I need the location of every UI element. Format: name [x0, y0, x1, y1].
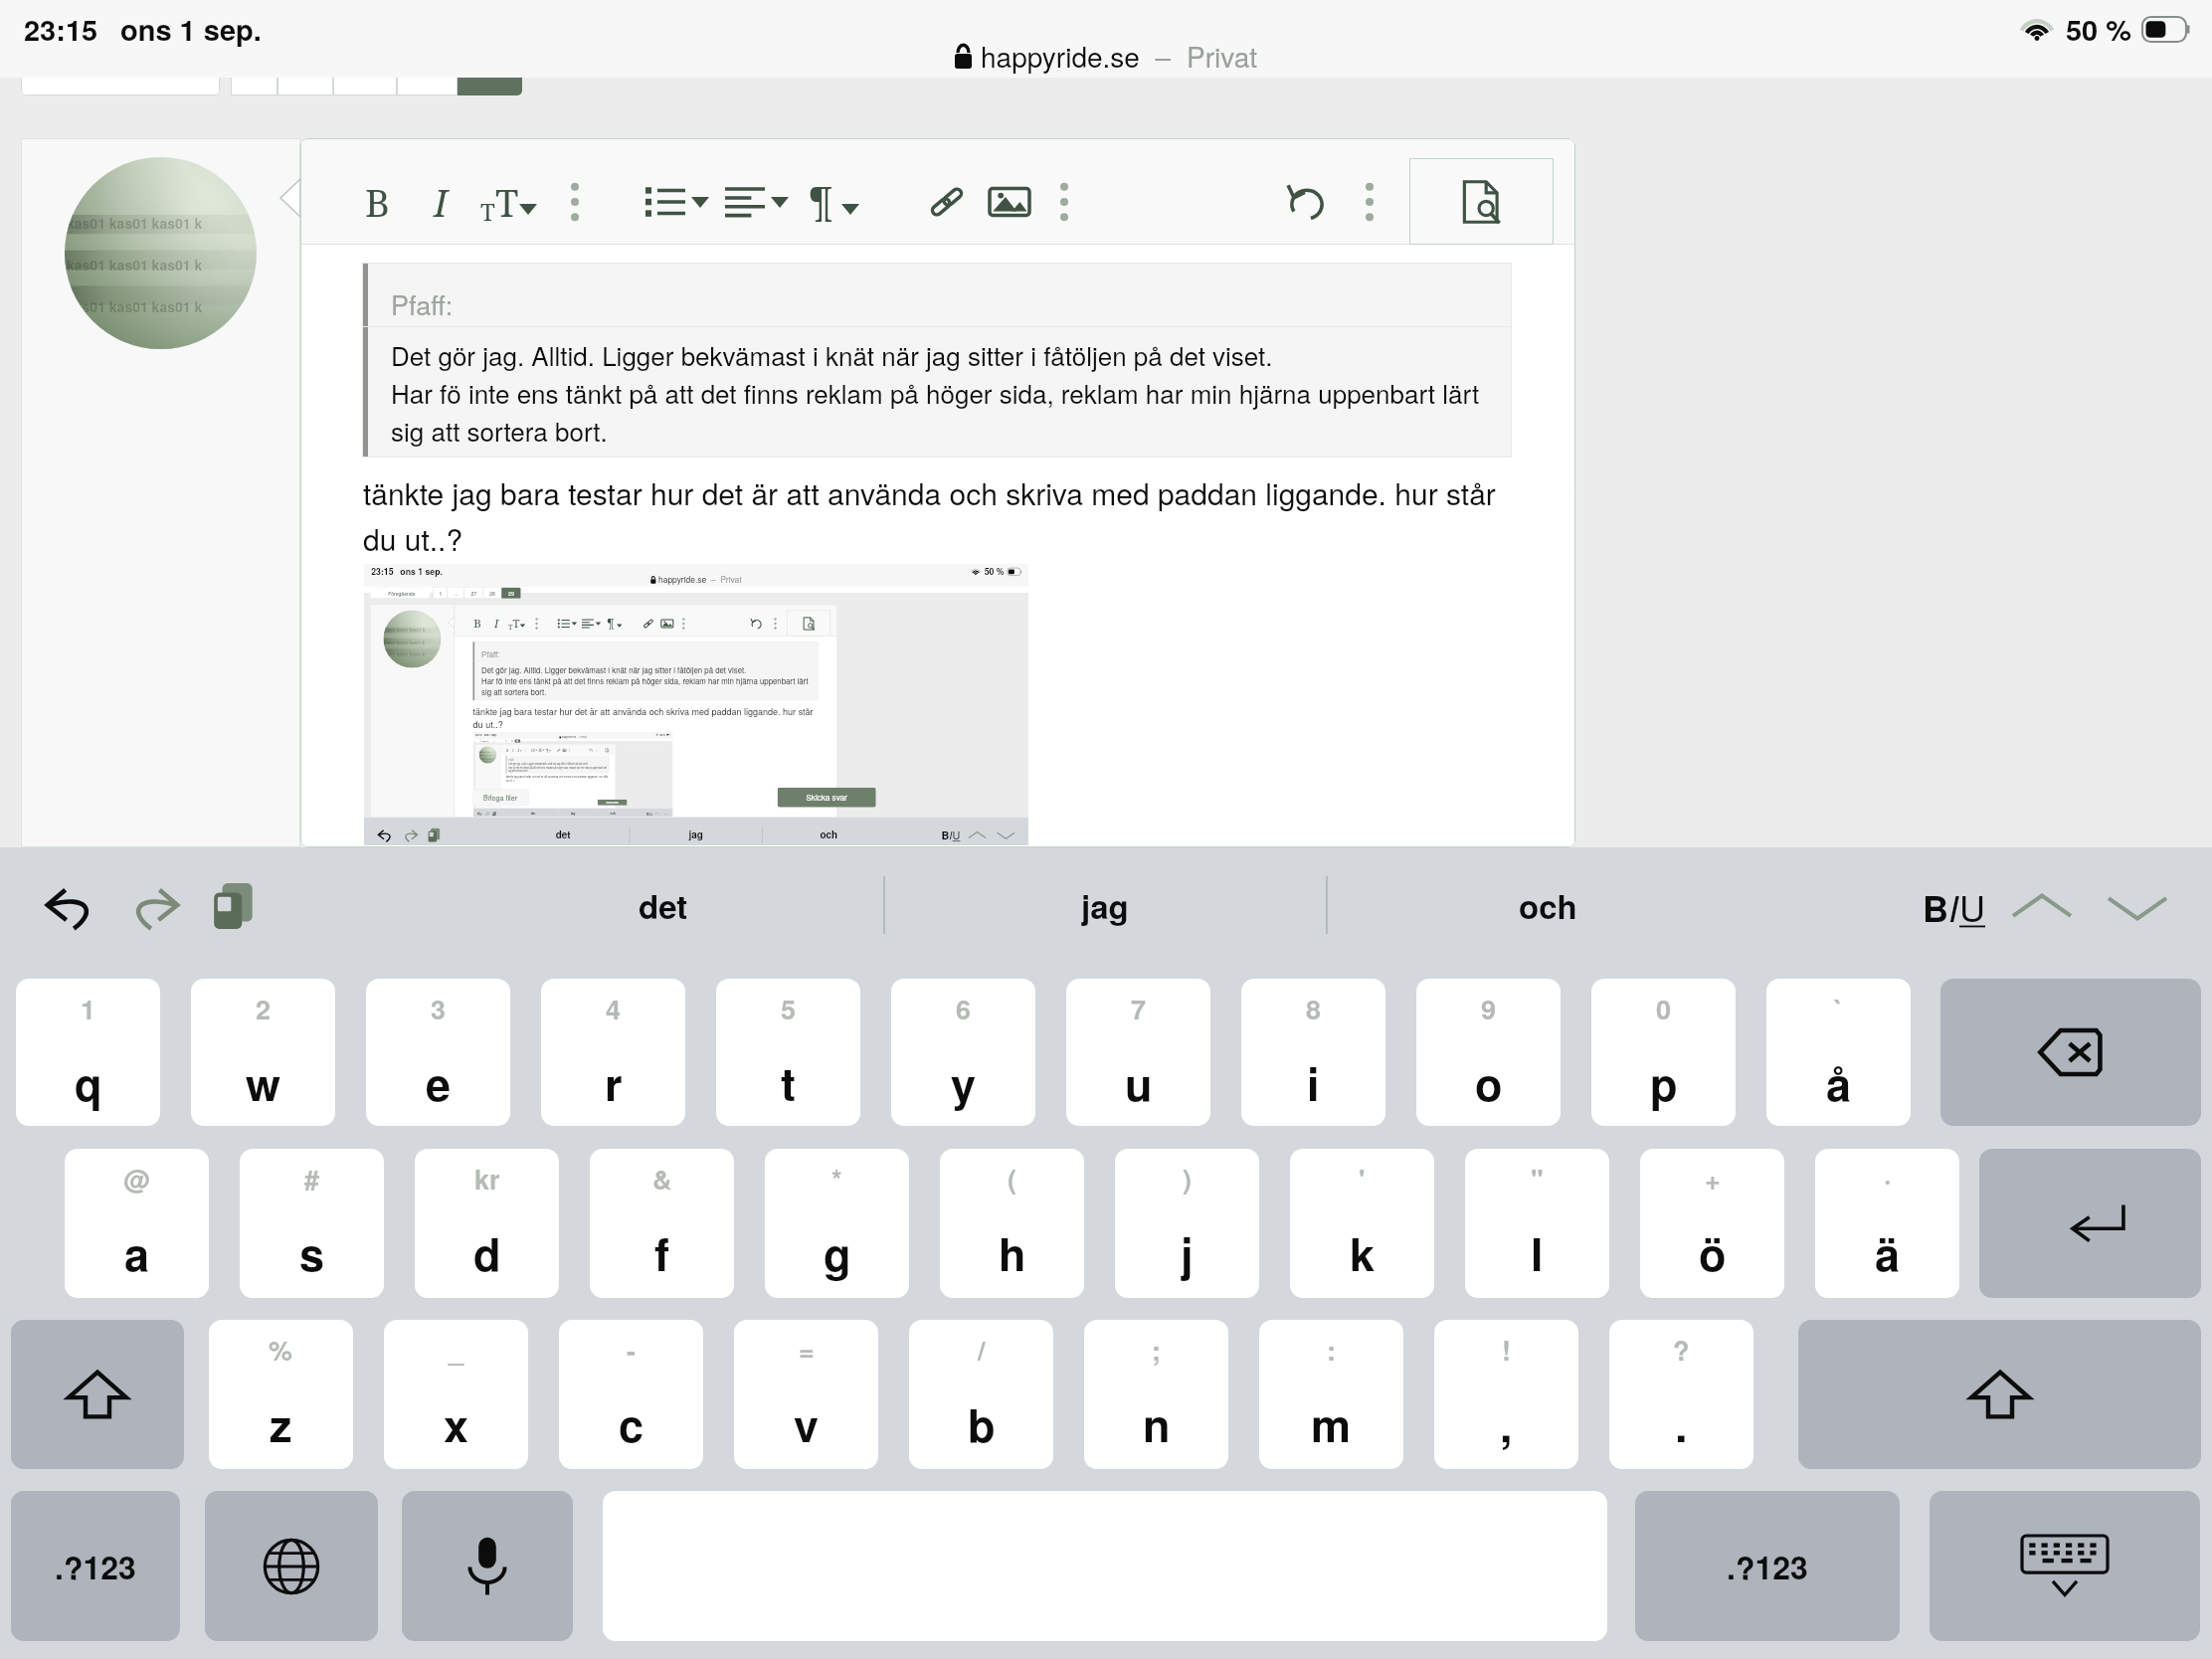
button[interactable]: Paste	[492, 811, 497, 816]
button[interactable]: 27	[503, 739, 509, 743]
button[interactable]: Undo	[749, 616, 764, 631]
button[interactable]: Undo	[377, 827, 393, 843]
button[interactable]	[277, 59, 333, 95]
button[interactable]: ;	[1084, 1320, 1228, 1469]
button[interactable]: Preview	[600, 746, 613, 754]
button[interactable]: More options	[523, 748, 527, 753]
button[interactable]: jag	[885, 847, 1325, 963]
button[interactable]: More options	[555, 176, 595, 228]
button[interactable]	[397, 59, 458, 95]
button[interactable]: Hide keyboard	[1930, 1491, 2200, 1641]
button[interactable]: Preview	[1409, 158, 1554, 245]
button[interactable]: Insert link	[641, 616, 656, 631]
button[interactable]: ‹ Föregående	[370, 587, 430, 598]
button[interactable]: Bold	[505, 748, 510, 753]
button[interactable]: ?	[1609, 1320, 1753, 1469]
button[interactable]: jag	[630, 817, 762, 845]
button[interactable]: 1	[433, 587, 447, 598]
button[interactable]: `	[1766, 979, 1911, 1126]
button[interactable]: Text formatting	[1923, 881, 1985, 933]
button[interactable]: Next field	[997, 829, 1014, 842]
button[interactable]: *	[765, 1149, 909, 1298]
button[interactable]: Paragraph style	[809, 175, 859, 229]
button[interactable]: kr	[415, 1149, 559, 1298]
button[interactable]: ‹ Föregående	[475, 739, 493, 743]
button[interactable]: Text size	[480, 176, 537, 228]
button[interactable]: Shift	[1798, 1320, 2201, 1469]
button[interactable]: Dictation	[402, 1491, 573, 1641]
button[interactable]: Next field	[664, 812, 669, 816]
button[interactable]: '	[1290, 1149, 1434, 1298]
button[interactable]: Italic	[415, 176, 466, 228]
button[interactable]: Text size	[517, 748, 522, 753]
button[interactable]: 1	[16, 979, 160, 1126]
button[interactable]: 5	[716, 979, 860, 1126]
button[interactable]: 3	[366, 979, 510, 1126]
button[interactable]: Next keyboard	[205, 1491, 378, 1641]
button[interactable]: Alignment	[539, 749, 545, 752]
button[interactable]: =	[734, 1320, 878, 1469]
button[interactable]: Lists	[558, 619, 577, 629]
button[interactable]: 4	[541, 979, 685, 1126]
button[interactable]: More options	[531, 616, 543, 631]
button[interactable]: Backspace	[1940, 979, 2201, 1126]
button[interactable]: Insert link	[921, 176, 973, 228]
button[interactable]: det	[513, 808, 553, 817]
button[interactable]: &	[590, 1149, 734, 1298]
button[interactable]: :	[1259, 1320, 1403, 1469]
button[interactable]: det	[497, 817, 629, 845]
button[interactable]: Undo	[589, 748, 594, 753]
button[interactable]: Alignment	[582, 619, 601, 629]
button[interactable]: Paragraph style	[607, 616, 622, 632]
button[interactable]: )	[1115, 1149, 1259, 1298]
button[interactable]: 28	[483, 587, 501, 598]
button[interactable]: Text formatting	[647, 811, 652, 816]
button[interactable]: …	[498, 739, 503, 743]
button[interactable]: More options	[678, 616, 690, 631]
button[interactable]	[21, 59, 220, 95]
button[interactable]: More options	[769, 616, 781, 631]
button[interactable]: @	[65, 1149, 209, 1298]
button[interactable]: More options	[1350, 176, 1389, 228]
button[interactable]	[231, 59, 277, 95]
button[interactable]: 6	[891, 979, 1035, 1126]
button[interactable]: 29	[515, 739, 520, 743]
button[interactable]: och	[1328, 847, 1767, 963]
button[interactable]: och	[593, 808, 633, 817]
button[interactable]: More options	[595, 748, 599, 753]
button[interactable]: Preview	[787, 610, 830, 636]
button[interactable]: Insert image	[562, 748, 567, 753]
button[interactable]: Previous field	[655, 812, 660, 816]
button[interactable]: Insert image	[984, 176, 1035, 228]
button[interactable]: #	[240, 1149, 384, 1298]
button[interactable]: "	[1465, 1149, 1609, 1298]
button[interactable]: Redo	[127, 879, 181, 933]
button[interactable]: Numbers	[1635, 1491, 1900, 1641]
button[interactable]: Redo	[402, 827, 418, 843]
button[interactable]: 8	[1241, 979, 1385, 1126]
button[interactable]: Previous field	[2013, 885, 2071, 929]
button[interactable]: _	[384, 1320, 528, 1469]
button[interactable]: Numbers	[11, 1491, 180, 1641]
button[interactable]: Italic	[489, 616, 504, 631]
button[interactable]: /	[909, 1320, 1053, 1469]
button[interactable]: …	[447, 587, 464, 598]
button[interactable]: och	[763, 817, 895, 845]
button[interactable]: !	[1434, 1320, 1578, 1469]
button[interactable]	[333, 59, 397, 95]
button[interactable]: 29	[501, 587, 521, 598]
button[interactable]: Insert image	[659, 616, 675, 631]
button[interactable]: Italic	[511, 748, 515, 753]
button[interactable]: More options	[1044, 176, 1084, 228]
button[interactable]: (	[940, 1149, 1084, 1298]
button[interactable]: Shift	[11, 1320, 184, 1469]
button[interactable]: Text size	[508, 616, 525, 631]
button[interactable]: 9	[1416, 979, 1561, 1126]
button[interactable]: 27	[464, 587, 483, 598]
button[interactable]: 28	[509, 739, 515, 743]
button[interactable]: Paragraph style	[546, 748, 551, 753]
button[interactable]: Undo	[477, 811, 482, 816]
button[interactable]: 0	[1591, 979, 1736, 1126]
button[interactable]	[458, 59, 522, 95]
